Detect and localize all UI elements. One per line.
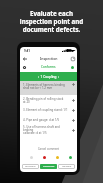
button[interactable]: Add — [70, 107, 76, 113]
staticText: Introduce — [25, 165, 36, 168]
staticText: ‹ 1 Coupling › — [38, 75, 60, 79]
staticText: 4. Pipe and gauge: d at 1/5 — [23, 118, 69, 122]
staticText: Evaluate each inspection point and docum… — [0, 9, 103, 33]
staticText: 9:41 — [24, 49, 30, 53]
button[interactable]: Measure — [58, 164, 75, 169]
staticText: Deactivate — [43, 165, 55, 168]
staticText: 2. Bending pin of rolling stock at 20 — [23, 97, 69, 104]
button[interactable]: Rating — [68, 155, 73, 160]
button[interactable]: Add — [70, 117, 76, 123]
button[interactable]: 2. Bending pin of rolling stock at 20 — [20, 95, 77, 105]
staticText: 5. Use of harness shaft and braking cali… — [23, 125, 69, 135]
button[interactable]: Deactivate — [40, 164, 57, 169]
button[interactable]: Rating — [55, 155, 60, 160]
button[interactable]: 1. Elements of harness binding shall not… — [20, 81, 77, 95]
staticText: Inspection — [40, 56, 58, 61]
button[interactable]: Conforms — [69, 64, 75, 70]
button[interactable]: Rating — [29, 155, 34, 160]
button[interactable]: Status — [21, 64, 28, 71]
button[interactable]: Add — [70, 97, 76, 103]
button[interactable]: Add — [70, 127, 76, 133]
staticText: 1. Elements of harness binding shall not… — [23, 83, 69, 90]
button[interactable]: Back — [21, 55, 28, 62]
button[interactable]: 5. Use of harness shaft and braking cali… — [20, 125, 77, 135]
button[interactable]: Add — [70, 81, 76, 87]
button[interactable]: 3. Element of coupling stand: 1/1 — [20, 105, 77, 115]
button[interactable]: Attach photo — [69, 55, 76, 62]
staticText: Cancel comment — [20, 147, 77, 151]
staticText: Conforms — [41, 65, 56, 69]
button[interactable]: ‹ 1 Coupling › — [20, 72, 77, 81]
staticText: 3. Element of coupling stand: 1/1 — [23, 108, 69, 112]
button[interactable]: 4. Pipe and gauge: d at 1/5 — [20, 115, 77, 125]
button[interactable]: Rating — [42, 155, 47, 160]
staticText: Measure — [62, 165, 72, 168]
button[interactable]: Introduce — [22, 164, 39, 169]
